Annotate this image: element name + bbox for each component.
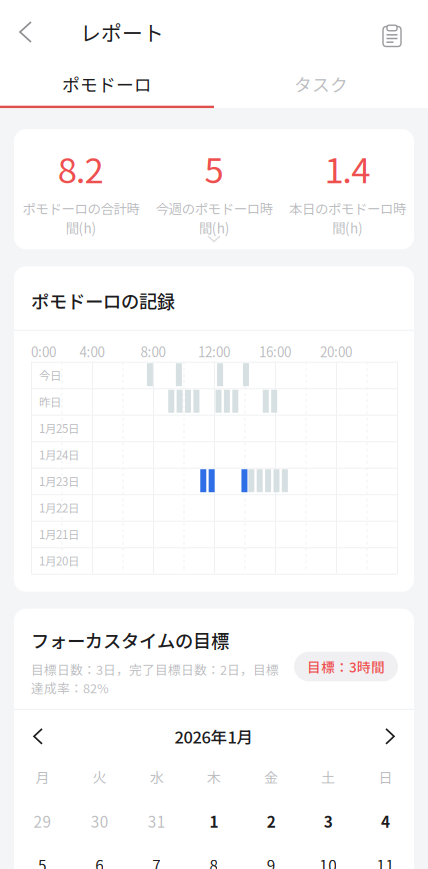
staticText: 1月23日: [39, 473, 79, 489]
staticText: 日: [378, 767, 392, 787]
staticText: 2026年1月: [174, 724, 253, 748]
staticText: ポモドーロの合計時間(h): [22, 198, 139, 237]
staticText: 今日: [39, 367, 61, 383]
staticText: 1月24日: [39, 446, 79, 463]
staticText: ポモドーロの記録: [31, 287, 175, 314]
button[interactable]: Next month: [374, 718, 406, 755]
button[interactable]: 4: [357, 799, 414, 843]
button[interactable]: 2: [243, 799, 300, 843]
staticText: 1月20日: [39, 552, 79, 569]
staticText: フォーカスタイムの目標: [31, 627, 229, 653]
button[interactable]: 1: [185, 799, 242, 843]
button[interactable]: Previous month: [22, 718, 54, 755]
button[interactable]: タスク: [214, 64, 428, 106]
staticText: 本日のポモドーロ時間(h): [289, 198, 406, 237]
staticText: 1: [209, 810, 218, 832]
staticText: 12:00: [198, 342, 230, 361]
staticText: 木: [207, 767, 221, 787]
staticText: 20:00: [320, 342, 352, 361]
staticText: 金: [264, 767, 278, 787]
staticText: 8: [209, 854, 218, 869]
staticText: 2: [267, 810, 276, 832]
staticText: 昨日: [39, 393, 61, 410]
staticText: 1.4: [324, 143, 370, 193]
staticText: 目標日数：3日，完了目標日数：2日，目標達成率：82%: [31, 660, 279, 697]
staticText: 0:00: [31, 342, 56, 361]
staticText: 今週のポモドーロ時間(h): [155, 198, 272, 237]
button[interactable]: Back: [0, 8, 49, 56]
staticText: 1月21日: [39, 526, 79, 542]
staticText: 4: [381, 810, 390, 832]
button[interactable]: Records: [369, 9, 428, 55]
staticText: 目標：3時間: [307, 657, 385, 676]
staticText: 10: [319, 854, 337, 869]
staticText: 8:00: [140, 342, 165, 361]
staticText: 1月25日: [39, 420, 79, 436]
staticText: 6: [95, 854, 104, 869]
staticText: 5: [38, 854, 47, 869]
staticText: 7: [152, 854, 161, 869]
staticText: 水: [150, 767, 164, 787]
staticText: 29: [34, 810, 52, 832]
button[interactable]: 30: [71, 799, 128, 843]
staticText: ポモドーロ: [62, 71, 152, 97]
staticText: 16:00: [259, 342, 291, 361]
staticText: タスク: [294, 71, 348, 97]
button[interactable]: ポモドーロ: [0, 64, 214, 106]
staticText: 土: [321, 767, 335, 787]
staticText: 火: [93, 767, 107, 787]
staticText: 11: [376, 854, 394, 869]
staticText: 3: [324, 810, 333, 832]
staticText: 5: [204, 143, 223, 193]
staticText: レポート: [80, 17, 164, 47]
staticText: 4:00: [79, 342, 104, 361]
staticText: 31: [148, 810, 166, 832]
staticText: 8.2: [58, 143, 103, 193]
button[interactable]: 3: [300, 799, 357, 843]
button[interactable]: 29: [14, 799, 71, 843]
staticText: 30: [91, 810, 109, 832]
staticText: 月: [36, 767, 50, 787]
staticText: 1月22日: [39, 499, 79, 516]
staticText: 9: [267, 854, 276, 869]
button[interactable]: 31: [128, 799, 185, 843]
